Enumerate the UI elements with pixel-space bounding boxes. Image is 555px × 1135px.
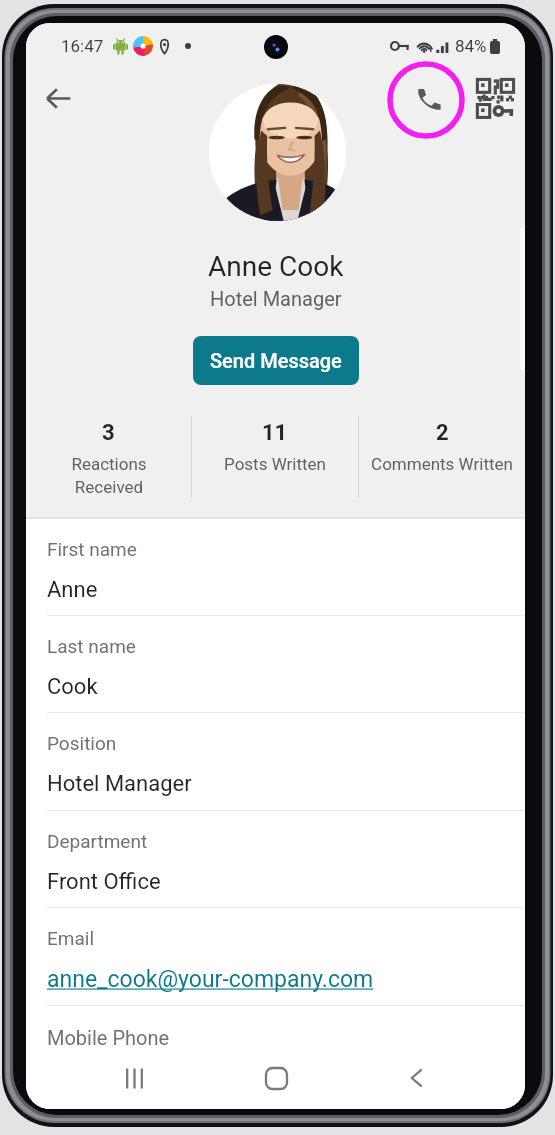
staticText: Reactions Received bbox=[71, 454, 147, 497]
button[interactable]: Email bbox=[26, 908, 525, 1006]
staticText: 84% bbox=[455, 36, 487, 56]
staticText: Send Message bbox=[210, 349, 342, 372]
button[interactable]: Position bbox=[26, 713, 525, 811]
button[interactable]: QR code bbox=[473, 76, 519, 122]
staticText: Cook bbox=[47, 674, 98, 700]
staticText: Posts Written bbox=[224, 454, 326, 474]
staticText: Comments Written bbox=[371, 454, 513, 474]
staticText: Anne Cook bbox=[208, 250, 344, 283]
button[interactable]: 3 bbox=[26, 416, 191, 498]
staticText: Department bbox=[47, 830, 148, 852]
button[interactable]: Send Message bbox=[193, 336, 359, 385]
staticText: Mobile Phone bbox=[47, 1026, 170, 1049]
staticText: Email bbox=[47, 927, 95, 949]
button[interactable]: 11 bbox=[192, 416, 358, 498]
button[interactable]: Home bbox=[248, 1050, 304, 1106]
button[interactable]: Back bbox=[36, 76, 80, 120]
staticText: Position bbox=[47, 732, 117, 754]
staticText: 16:47 bbox=[61, 36, 104, 56]
staticText: 11 bbox=[262, 420, 288, 446]
staticText: Hotel Manager bbox=[210, 287, 342, 310]
button[interactable]: Last name bbox=[26, 616, 525, 713]
staticText: Hotel Manager bbox=[47, 771, 192, 797]
staticText: Last name bbox=[47, 635, 136, 657]
staticText: 2 bbox=[436, 420, 449, 446]
button[interactable]: Department bbox=[26, 811, 525, 908]
staticText: 3 bbox=[102, 420, 115, 446]
button[interactable]: Mobile Phone bbox=[26, 1006, 525, 1066]
staticText: Front Office bbox=[47, 869, 161, 895]
button[interactable]: Recent apps bbox=[106, 1050, 162, 1106]
button[interactable]: First name bbox=[26, 519, 525, 616]
button[interactable]: Back bbox=[388, 1050, 444, 1106]
button[interactable]: 2 bbox=[359, 416, 525, 498]
staticText: anne_cook@your-company.com bbox=[47, 966, 374, 993]
staticText: First name bbox=[47, 538, 137, 560]
button[interactable]: Call bbox=[400, 71, 456, 127]
staticText: Anne bbox=[47, 577, 98, 603]
